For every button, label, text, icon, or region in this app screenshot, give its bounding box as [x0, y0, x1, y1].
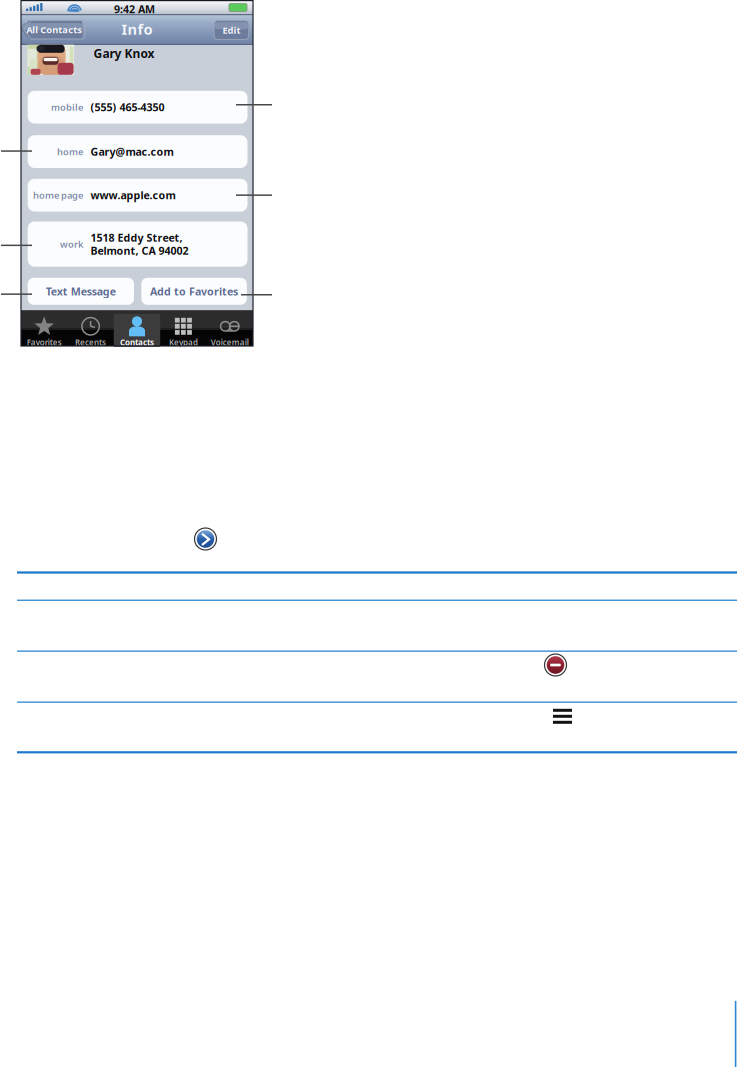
button[interactable]: Recents [67, 314, 114, 347]
staticText: Add to Favorites [150, 284, 238, 298]
button[interactable]: home [28, 135, 247, 168]
staticText: Info [121, 19, 152, 39]
button[interactable]: Voicemail [207, 314, 253, 347]
staticText: Text Message [46, 284, 116, 298]
staticText: Gary@mac.com [91, 144, 174, 159]
button[interactable]: Favorites [21, 314, 67, 347]
staticText: Belmont, CA 94002 [91, 244, 189, 258]
staticText: Favorites [27, 337, 62, 348]
staticText: Edit [222, 24, 240, 36]
button[interactable]: work [28, 221, 247, 267]
staticText: All Contacts [26, 24, 82, 36]
staticText: home page [33, 189, 83, 201]
button[interactable]: Add to Favorites [141, 278, 247, 305]
staticText: Contacts [120, 337, 154, 348]
button[interactable]: Edit [214, 21, 249, 39]
staticText: Gary Knox [93, 45, 154, 61]
staticText: 1518 Eddy Street, [91, 230, 183, 245]
staticText: mobile [51, 101, 83, 113]
staticText: Keypad [169, 337, 198, 348]
staticText: Recents [75, 337, 106, 348]
button[interactable]: Reorder [553, 709, 572, 724]
button[interactable]: Contacts [114, 314, 160, 347]
button[interactable]: mobile [28, 91, 247, 124]
button[interactable]: Keypad [160, 314, 207, 347]
staticText: www.apple.com [91, 188, 176, 202]
button[interactable]: home page [28, 179, 247, 212]
button[interactable]: Delete [544, 654, 566, 676]
staticText: work [60, 238, 83, 250]
staticText: Voicemail [211, 337, 249, 348]
button[interactable]: Disclosure [194, 528, 216, 550]
staticText: (555) 465-4350 [91, 100, 165, 114]
button[interactable]: Text Message [28, 278, 134, 305]
staticText: home [57, 145, 83, 158]
staticText: 9:42 AM [114, 2, 155, 16]
button[interactable]: All Contacts [23, 20, 85, 39]
